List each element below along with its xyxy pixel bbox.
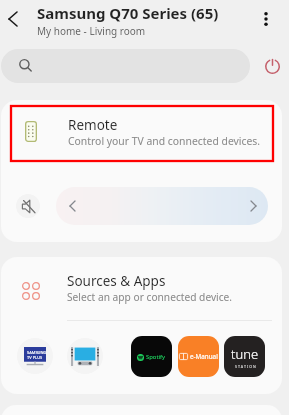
- button[interactable]: Tune Station: [224, 336, 265, 377]
- button[interactable]: e-Manual: [178, 336, 219, 377]
- staticText: tune: [231, 345, 259, 363]
- staticText: SAMSUNG: [27, 350, 47, 355]
- button[interactable]: Search: [1, 49, 250, 83]
- button[interactable]: Next: [238, 187, 268, 225]
- staticText: Control your TV and connected devices.: [68, 134, 261, 148]
- button[interactable]: Spotify: [131, 336, 172, 377]
- button[interactable]: Previous: [57, 187, 87, 225]
- staticText: Spotify: [146, 353, 166, 361]
- button[interactable]: Sources & Apps: [1, 259, 282, 317]
- button[interactable]: HDMI 1: [67, 338, 103, 374]
- staticText: S T A T I O N: [235, 364, 256, 369]
- button[interactable]: Samsung TV Plus: [17, 338, 53, 374]
- staticText: My home - Living room: [37, 24, 146, 38]
- button[interactable]: More options: [255, 5, 277, 33]
- staticText: e-Manual: [190, 352, 218, 361]
- staticText: TV PLUS: [27, 355, 43, 360]
- staticText: Remote: [68, 116, 118, 134]
- button[interactable]: Remote: [11, 104, 273, 159]
- staticText: Samsung Q70 Series (65): [37, 3, 219, 23]
- button[interactable]: Back: [2, 5, 24, 33]
- staticText: Sources & Apps: [67, 272, 166, 290]
- button[interactable]: Power: [261, 55, 284, 78]
- button[interactable]: Mute: [16, 194, 40, 218]
- staticText: Select an app or connected device.: [67, 290, 233, 304]
